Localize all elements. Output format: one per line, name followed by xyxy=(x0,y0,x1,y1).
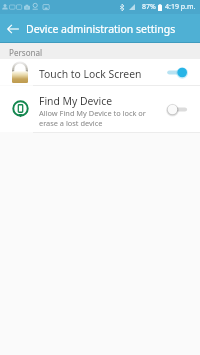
staticText: 87% xyxy=(142,2,156,12)
staticText: Device administration settings xyxy=(26,22,176,36)
button[interactable]: Back xyxy=(0,16,26,42)
staticText: 4:19 p.m. xyxy=(165,2,196,12)
button[interactable]: Find My Device xyxy=(0,86,200,132)
staticText: Allow Find My Device to lock or erase a … xyxy=(39,108,146,128)
staticText: Touch to Lock Screen xyxy=(39,67,142,81)
button[interactable]: Toggle off xyxy=(166,102,187,116)
staticText: Personal xyxy=(9,47,43,58)
button[interactable]: Touch to Lock Screen xyxy=(0,59,200,85)
button[interactable]: Toggle on xyxy=(166,65,187,79)
staticText: Find My Device xyxy=(39,94,113,108)
